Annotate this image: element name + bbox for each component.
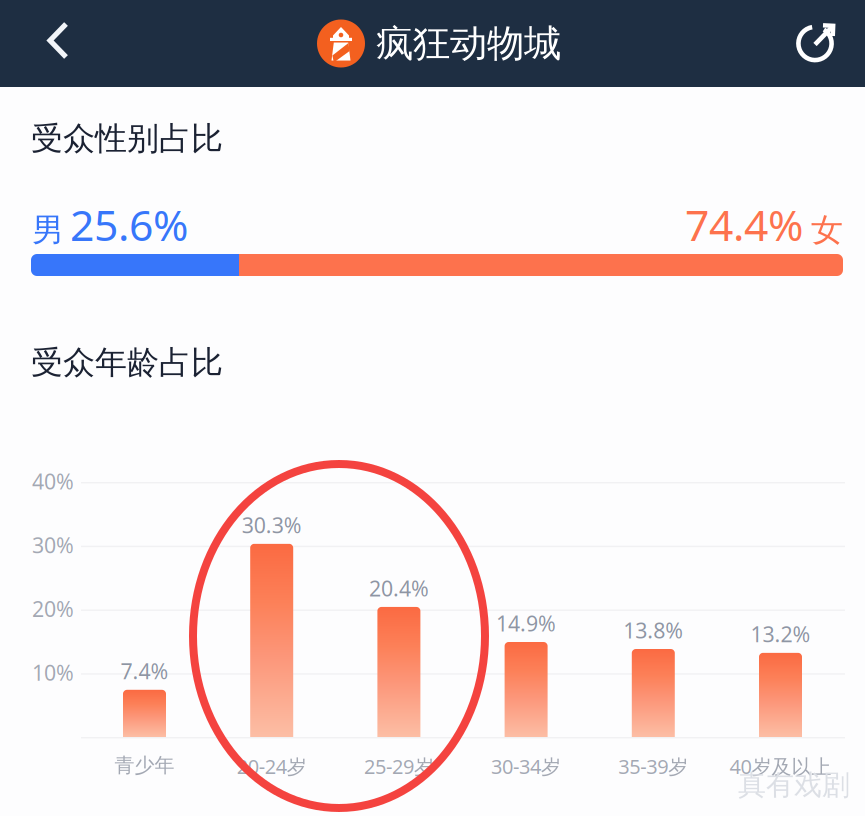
staticText: 20.4%: [369, 574, 429, 602]
staticText: 13.2%: [750, 620, 810, 648]
staticText: 14.9%: [496, 609, 556, 637]
staticText: 30-34岁: [491, 753, 561, 780]
staticText: 74.4%: [685, 196, 803, 253]
staticText: 25.6%: [70, 196, 188, 253]
staticText: 7.4%: [120, 657, 168, 685]
staticText: 真有戏剧: [738, 768, 850, 802]
staticText: 25-29岁: [364, 753, 434, 780]
staticText: 青少年: [114, 753, 174, 778]
staticText: 30%: [32, 531, 74, 559]
staticText: 40%: [32, 467, 74, 495]
staticText: 40岁及以上: [729, 753, 831, 780]
staticText: 10%: [32, 658, 74, 686]
staticText: 女: [811, 210, 843, 250]
staticText: 20-24岁: [237, 753, 307, 780]
staticText: 受众年龄占比: [31, 343, 223, 382]
staticText: 13.8%: [623, 616, 683, 644]
staticText: 35-39岁: [618, 753, 688, 780]
staticText: 疯狂动物城: [376, 21, 561, 66]
staticText: 20%: [32, 594, 74, 623]
staticText: 30.3%: [242, 511, 302, 539]
staticText: 男: [32, 210, 64, 250]
staticText: 受众性别占比: [31, 119, 223, 158]
button[interactable]: Back: [15, 0, 101, 84]
button[interactable]: Share: [776, 0, 862, 86]
